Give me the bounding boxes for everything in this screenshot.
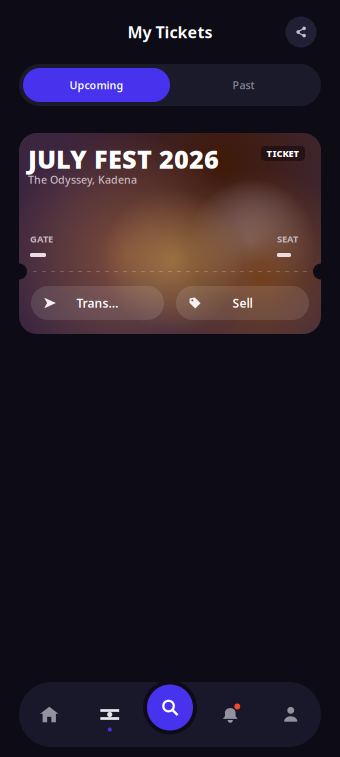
staticText: SEAT [277, 233, 298, 245]
button[interactable]: Sell [176, 286, 309, 320]
staticText: Trans… [76, 295, 118, 311]
button[interactable]: Search [141, 678, 199, 736]
staticText: Upcoming [69, 78, 123, 92]
staticText: The Odyssey, Kadena [28, 173, 137, 187]
button[interactable]: Notifications [200, 682, 260, 747]
button[interactable]: Past [170, 68, 317, 102]
button[interactable]: My Tickets [79, 682, 140, 747]
staticText: Sell [232, 295, 252, 311]
button[interactable]: Upcoming [23, 68, 170, 102]
button[interactable]: Share [281, 12, 321, 52]
staticText: My Tickets [127, 21, 212, 43]
button[interactable]: Trans… [31, 286, 164, 320]
staticText: Past [232, 78, 254, 92]
button[interactable]: Home [19, 682, 79, 747]
staticText: GATE [30, 233, 53, 245]
button[interactable]: Profile [260, 682, 321, 747]
staticText: TICKET [266, 147, 299, 160]
staticText: JULY FEST 2026 [28, 142, 219, 176]
